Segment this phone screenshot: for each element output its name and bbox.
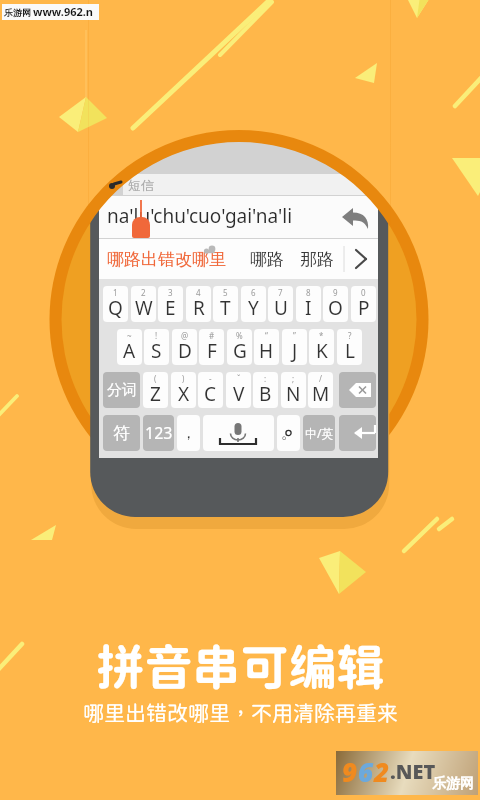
button[interactable]: ”	[282, 329, 307, 365]
button[interactable]: 5	[213, 286, 238, 322]
staticText: 乐游网	[4, 7, 31, 18]
staticText: 哪里出错改哪里，不用清除再重来	[83, 701, 398, 726]
staticText: :	[264, 373, 267, 384]
staticText: 中/英	[305, 425, 334, 441]
button[interactable]: ;	[281, 372, 306, 408]
staticText: T	[220, 295, 231, 321]
button[interactable]: -	[198, 372, 223, 408]
staticText: na'lu'chu'cuo'gai'na'li	[107, 203, 293, 229]
staticText: G	[233, 338, 247, 364]
staticText: 乐游网	[432, 775, 474, 793]
button[interactable]: %	[227, 329, 252, 365]
staticText: 4	[196, 287, 201, 298]
staticText: 2	[141, 287, 146, 298]
button[interactable]: )	[171, 372, 196, 408]
staticText: L	[345, 338, 355, 364]
staticText: Q	[108, 295, 123, 321]
button[interactable]: 1	[103, 286, 128, 322]
button[interactable]: :	[253, 372, 278, 408]
staticText: ”	[293, 330, 296, 341]
staticText: .NET	[390, 758, 436, 785]
button[interactable]: Enter	[339, 415, 376, 451]
staticText: %	[236, 330, 243, 341]
staticText: 9	[342, 754, 358, 789]
staticText: S	[151, 338, 162, 364]
staticText: E	[165, 295, 176, 321]
staticText: 5	[223, 287, 228, 298]
button[interactable]: 那路	[300, 249, 334, 270]
button[interactable]: ，	[177, 415, 200, 451]
button[interactable]: 3	[158, 286, 183, 322]
staticText: 拼音串可编辑	[96, 638, 385, 695]
staticText: @	[181, 330, 189, 341]
staticText: I	[305, 295, 312, 321]
button[interactable]: ˇ	[226, 372, 251, 408]
staticText: 6	[358, 754, 374, 789]
button[interactable]: !	[144, 329, 169, 365]
staticText: www.962.net	[33, 4, 99, 20]
staticText: -	[209, 373, 212, 384]
staticText: 6	[251, 287, 256, 298]
button[interactable]: *	[309, 329, 334, 365]
staticText: O	[328, 295, 343, 321]
button[interactable]: /	[308, 372, 333, 408]
staticText: 短信	[128, 177, 154, 193]
staticText: 。	[281, 424, 296, 443]
staticText: “	[265, 330, 268, 341]
button[interactable]: Undo	[342, 202, 372, 232]
staticText: B	[259, 381, 272, 407]
staticText: U	[274, 295, 288, 321]
button[interactable]: 0	[351, 286, 376, 322]
staticText: R	[193, 295, 205, 321]
staticText: Z	[150, 381, 161, 407]
button[interactable]: 6	[241, 286, 266, 322]
button[interactable]: 7	[268, 286, 293, 322]
staticText: ，	[181, 424, 196, 443]
button[interactable]: ?	[337, 329, 362, 365]
staticText: 分词	[107, 381, 137, 400]
button[interactable]: 中/英	[303, 415, 335, 451]
staticText: #	[209, 330, 215, 341]
button[interactable]: Space	[203, 415, 274, 451]
staticText: H	[259, 338, 274, 364]
button[interactable]: @	[172, 329, 197, 365]
staticText: X	[178, 381, 190, 407]
button[interactable]: #	[199, 329, 224, 365]
button[interactable]: 2	[131, 286, 156, 322]
staticText: D	[178, 338, 192, 364]
staticText: 8	[306, 287, 311, 298]
button[interactable]: More candidates	[346, 239, 378, 279]
button[interactable]: 8	[296, 286, 321, 322]
staticText: N	[286, 381, 301, 407]
button[interactable]: (	[143, 372, 168, 408]
button[interactable]: 符	[103, 415, 140, 451]
button[interactable]: ~	[117, 329, 142, 365]
staticText: K	[316, 338, 328, 364]
button[interactable]: 哪路出错改哪里	[107, 249, 226, 270]
staticText: P	[358, 295, 370, 321]
staticText: *	[319, 330, 324, 341]
staticText: V	[233, 381, 245, 407]
button[interactable]: 9	[323, 286, 348, 322]
staticText: M	[312, 381, 330, 407]
button[interactable]: 4	[186, 286, 211, 322]
staticText: ~	[127, 330, 132, 341]
button[interactable]: 哪路	[250, 249, 284, 270]
staticText: 3	[168, 287, 173, 298]
staticText: 1	[113, 287, 118, 298]
staticText: Y	[248, 295, 259, 321]
staticText: F	[207, 338, 217, 364]
button[interactable]: 分词	[103, 372, 140, 408]
button[interactable]: “	[254, 329, 279, 365]
staticText: 2	[374, 754, 390, 789]
button[interactable]: 。	[277, 415, 300, 451]
staticText: 7	[278, 287, 283, 298]
button[interactable]: Backspace	[339, 372, 376, 408]
staticText: /	[319, 373, 322, 384]
staticText: A	[123, 338, 136, 364]
button[interactable]: 123	[143, 415, 174, 451]
staticText: 符	[113, 423, 130, 444]
staticText: 0	[361, 287, 366, 298]
button[interactable]: 短信	[123, 174, 367, 195]
staticText: !	[155, 330, 158, 341]
